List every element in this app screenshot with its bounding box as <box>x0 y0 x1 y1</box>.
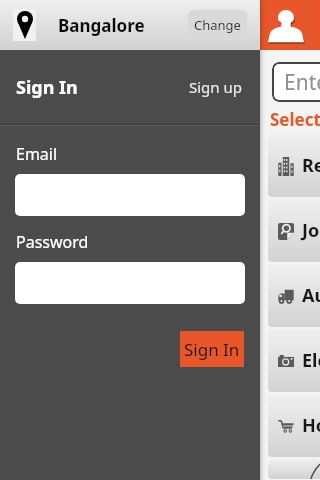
staticText: Electronics <box>302 348 320 373</box>
staticText: Select Your City <box>270 108 320 131</box>
staticText: Change <box>194 16 241 34</box>
button[interactable]: Location <box>13 9 36 41</box>
button[interactable] <box>15 174 245 216</box>
staticText: Sign In <box>16 75 78 100</box>
staticText: Jobs <box>302 218 320 243</box>
button[interactable]: Home Needs <box>268 394 320 457</box>
staticText: Home Needs <box>302 413 320 438</box>
button[interactable]: Real Estate <box>268 134 320 197</box>
button[interactable]: Jobs <box>268 199 320 262</box>
button[interactable]: Electronics <box>268 329 320 392</box>
button[interactable]: Sign up <box>187 72 244 102</box>
staticText: Enter City <box>284 68 320 97</box>
button[interactable] <box>268 459 320 479</box>
staticText: Password <box>16 231 89 253</box>
staticText: Sign up <box>189 77 242 97</box>
staticText: Sign In <box>184 338 240 361</box>
staticText: Email <box>16 143 58 165</box>
staticText: Real Estate <box>302 153 320 178</box>
button[interactable]: Profile <box>262 0 309 50</box>
staticText: Bangalore <box>58 14 145 37</box>
staticText: Automobile <box>302 283 320 308</box>
button[interactable]: Sign In <box>180 331 244 367</box>
button[interactable]: Enter City <box>272 62 320 102</box>
button[interactable] <box>15 262 245 304</box>
button[interactable]: Change <box>188 10 247 40</box>
button[interactable]: Automobile <box>268 264 320 327</box>
